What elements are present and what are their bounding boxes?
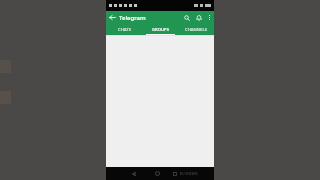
button[interactable]: CHATS: [106, 24, 142, 35]
staticText: DU SCREEN RECORDER: [180, 172, 214, 176]
button[interactable]: Back: [106, 11, 118, 24]
staticText: CHATS: [118, 27, 131, 33]
button[interactable]: Home: [152, 167, 163, 180]
button[interactable]: More options: [205, 11, 214, 24]
staticText: GROUPS: [152, 27, 169, 33]
button[interactable]: GROUPS: [142, 24, 178, 35]
staticText: Telegram: [119, 14, 181, 22]
button[interactable]: Recent apps: [170, 167, 180, 180]
staticText: CHANNELS: [185, 27, 207, 33]
button[interactable]: Search: [181, 11, 193, 24]
button[interactable]: Notifications: [193, 11, 205, 24]
button[interactable]: Back: [128, 167, 139, 180]
button[interactable]: CHANNELS: [178, 24, 214, 35]
